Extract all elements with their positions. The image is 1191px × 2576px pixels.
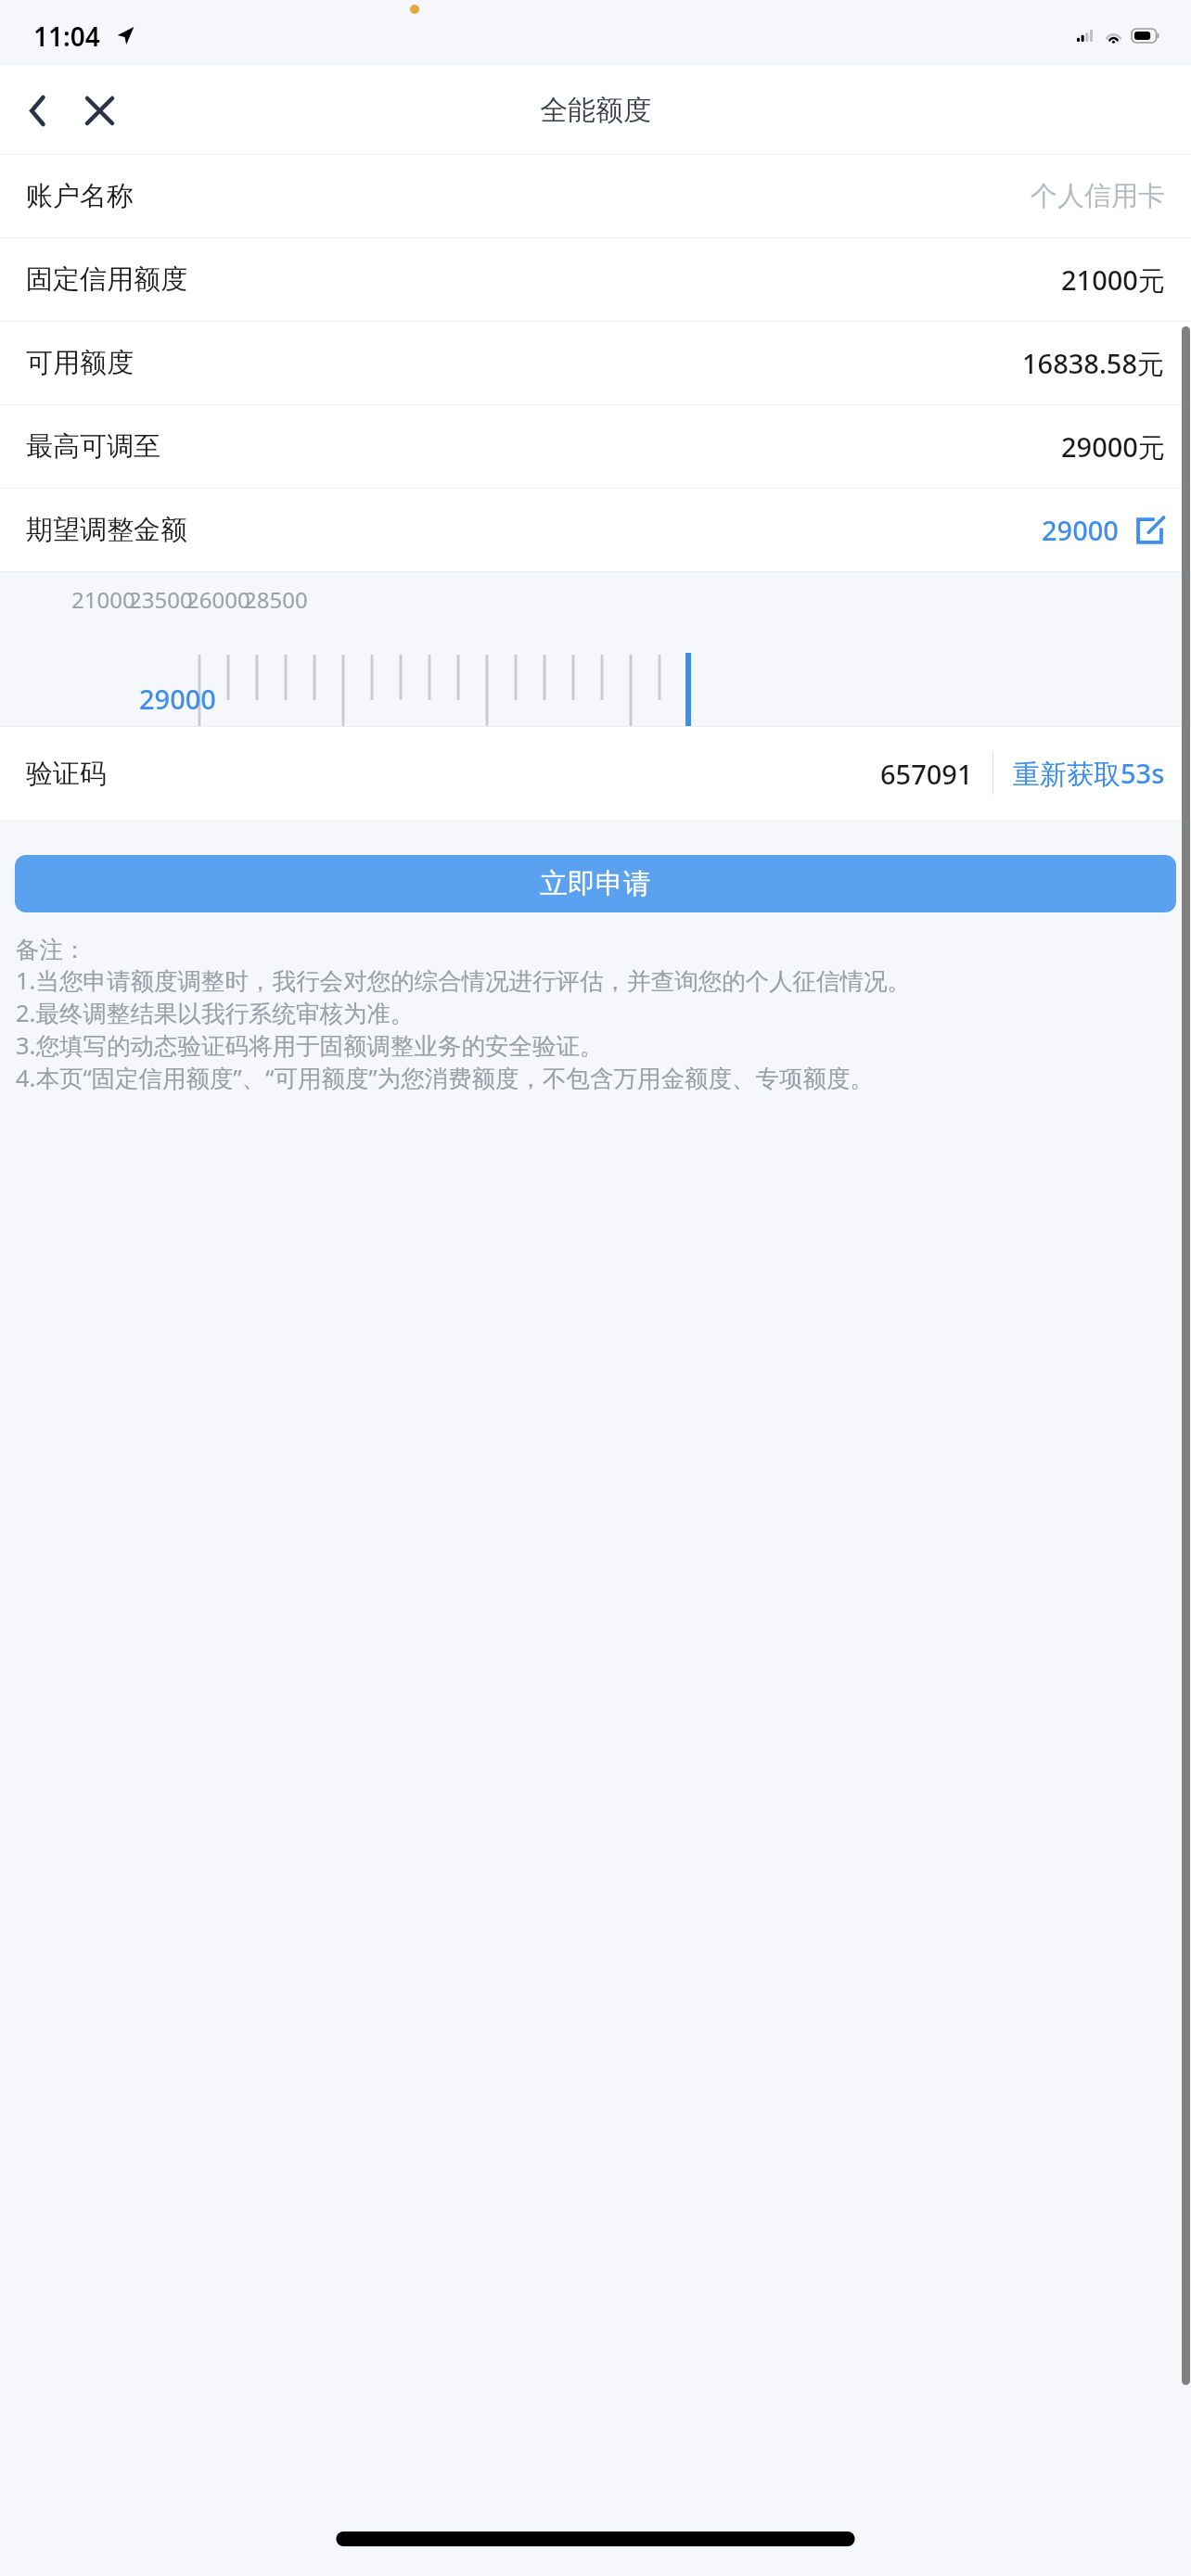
staticText: 3.您填写的动态验证码将用于固额调整业务的安全验证。 (16, 1029, 604, 1062)
staticText: 29000 (1042, 512, 1119, 548)
button[interactable]: 账户名称 (0, 155, 1191, 237)
staticText: 备注： (16, 935, 87, 964)
button[interactable]: 可用额度 (0, 322, 1191, 404)
button[interactable]: 期望调整金额 (0, 489, 1191, 571)
staticText: 657091 (880, 756, 973, 792)
staticText: 1.当您申请额度调整时，我行会对您的综合情况进行评估，并查询您的个人征信情况。 (16, 964, 911, 997)
staticText: 16838.58元 (1022, 345, 1165, 382)
staticText: 21000元 (1061, 261, 1165, 299)
staticText: 可用额度 (26, 346, 134, 380)
staticText: 验证码 (26, 757, 107, 791)
staticText: 28500 (244, 584, 308, 615)
staticText: 账户名称 (26, 179, 134, 213)
button[interactable]: 固定信用额度 (0, 238, 1191, 321)
staticText: 4.本页“固定信用额度”、“可用额度”为您消费额度，不包含万用金额度、专项额度。 (16, 1062, 875, 1094)
button[interactable]: Close (74, 85, 124, 135)
staticText: 固定信用额度 (26, 262, 187, 297)
staticText: 期望调整金额 (26, 513, 187, 547)
staticText: 23500 (129, 584, 193, 615)
staticText: 21000 (71, 584, 135, 615)
button[interactable]: 最高可调至 (0, 405, 1191, 488)
button[interactable]: 立即申请 (15, 855, 1176, 912)
staticText: 全能额度 (540, 93, 651, 128)
staticText: 最高可调至 (26, 429, 160, 464)
button[interactable]: Edit amount (1133, 515, 1165, 546)
staticText: 29000 (139, 681, 216, 717)
staticText: 26000 (186, 584, 250, 615)
staticText: 立即申请 (540, 866, 651, 901)
staticText: 11:04 (33, 19, 100, 54)
staticText: 个人信用卡 (1031, 179, 1165, 213)
staticText: 重新获取53s (1013, 755, 1165, 792)
button[interactable]: Back (13, 86, 61, 134)
button[interactable]: 重新获取53s (1013, 755, 1165, 792)
staticText: 2.最终调整结果以我行系统审核为准。 (16, 997, 415, 1029)
staticText: 29000元 (1061, 428, 1165, 465)
